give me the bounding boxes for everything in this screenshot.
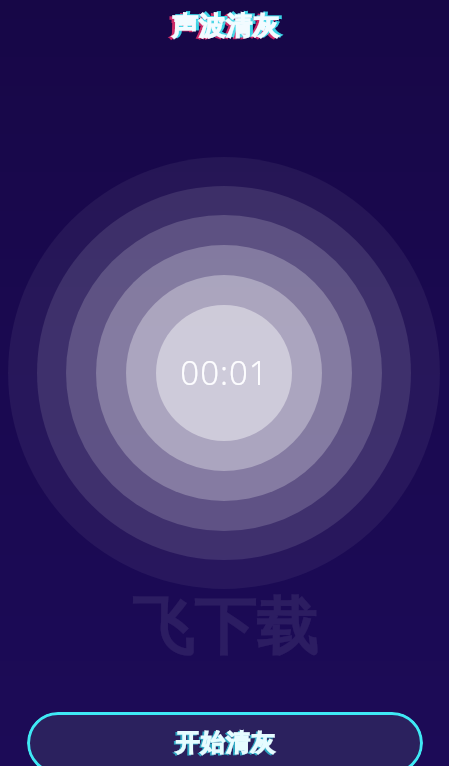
- staticText: 声波清灰: [174, 9, 282, 42]
- staticText: 开始清灰: [173, 729, 273, 759]
- staticText: 开始清灰: [175, 728, 275, 758]
- staticText: 声波清灰: [168, 11, 276, 44]
- button[interactable]: 开始清灰: [27, 712, 423, 766]
- staticText: 00:01: [180, 350, 269, 395]
- staticText: 声波清灰: [171, 10, 279, 43]
- staticText: 飞下载: [132, 588, 318, 666]
